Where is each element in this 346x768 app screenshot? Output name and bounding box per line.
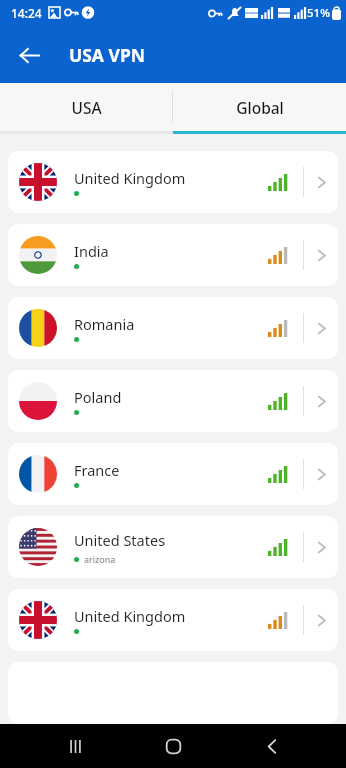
staticText: India: [74, 241, 109, 261]
staticText: Poland: [74, 387, 122, 407]
staticText: USA: [71, 97, 102, 118]
button[interactable]: Open United Kingdom: [304, 589, 338, 651]
button[interactable]: France: [8, 443, 338, 505]
button[interactable]: Back: [248, 724, 296, 768]
staticText: arizona: [84, 553, 116, 565]
button[interactable]: Romania: [8, 297, 338, 359]
button[interactable]: United States: [8, 516, 338, 578]
button[interactable]: Open Romania: [304, 297, 338, 359]
button[interactable]: Open France: [304, 443, 338, 505]
staticText: USA VPN: [69, 43, 146, 67]
button[interactable]: United Kingdom: [8, 151, 338, 213]
button[interactable]: Back: [12, 38, 46, 72]
staticText: 14:24: [11, 5, 42, 21]
button[interactable]: USA: [0, 83, 172, 131]
button[interactable]: Home: [149, 724, 197, 768]
staticText: 51%: [307, 5, 330, 21]
button[interactable]: Recent apps: [51, 724, 99, 768]
button[interactable]: Open India: [304, 224, 338, 286]
staticText: United States: [74, 530, 166, 550]
staticText: United Kingdom: [74, 168, 186, 188]
button[interactable]: Open United States: [304, 516, 338, 578]
button[interactable]: United Kingdom: [8, 589, 338, 651]
staticText: Global: [236, 97, 284, 118]
button[interactable]: Open Poland: [304, 370, 338, 432]
button[interactable]: India: [8, 224, 338, 286]
staticText: France: [74, 460, 120, 480]
staticText: Romania: [74, 314, 135, 334]
button[interactable]: Open United Kingdom: [304, 151, 338, 213]
button[interactable]: Global: [173, 83, 346, 131]
button[interactable]: Poland: [8, 370, 338, 432]
staticText: United Kingdom: [74, 606, 186, 626]
